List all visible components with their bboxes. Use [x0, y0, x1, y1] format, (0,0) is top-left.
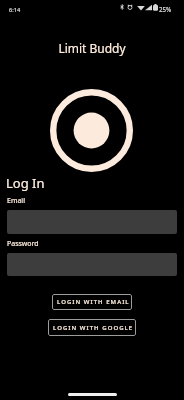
staticText: 25% — [159, 5, 172, 13]
staticText: Password — [7, 239, 39, 249]
button[interactable]: LOGIN WITH GOOGLE — [48, 319, 136, 336]
staticText: LOGIN WITH EMAIL — [57, 298, 130, 306]
staticText: LOGIN WITH GOOGLE — [53, 324, 134, 332]
staticText: 6:14 — [9, 6, 21, 14]
button[interactable]: LOGIN WITH EMAIL — [52, 294, 132, 310]
staticText: Log In — [6, 174, 45, 192]
staticText: Email — [7, 196, 25, 206]
staticText: Limit Buddy — [0, 40, 184, 56]
